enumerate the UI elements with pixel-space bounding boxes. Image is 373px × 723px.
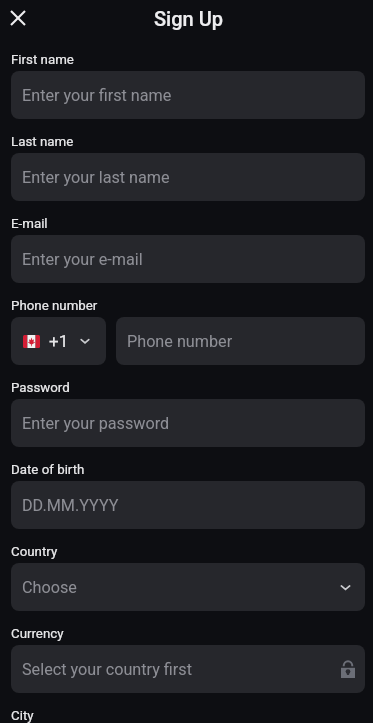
staticText: First name: [11, 52, 74, 68]
staticText: Enter your first name: [22, 86, 353, 105]
staticText: Select your country first: [22, 660, 341, 679]
staticText: Choose: [22, 578, 340, 597]
button[interactable]: Phone number: [116, 317, 365, 365]
button[interactable]: Enter your e-mail: [11, 235, 365, 283]
staticText: Enter your e-mail: [22, 250, 353, 269]
staticText: DD.MM.YYYY: [22, 496, 353, 515]
button[interactable]: DD.MM.YYYY: [11, 481, 365, 529]
staticText: Last name: [11, 134, 74, 150]
button[interactable]: Close: [5, 5, 31, 31]
staticText: Phone number: [127, 332, 353, 351]
staticText: Sign Up: [154, 7, 223, 30]
staticText: Country: [11, 544, 58, 560]
button[interactable]: Choose: [11, 563, 365, 611]
staticText: E-mail: [11, 216, 48, 232]
button[interactable]: +1: [11, 317, 106, 365]
button[interactable]: Enter your last name: [11, 153, 365, 201]
button[interactable]: Enter your password: [11, 399, 365, 447]
staticText: Enter your last name: [22, 168, 353, 187]
staticText: Date of birth: [11, 462, 85, 478]
staticText: +1: [49, 331, 69, 351]
staticText: Password: [11, 380, 70, 396]
staticText: Phone number: [11, 298, 98, 314]
button[interactable]: Enter your first name: [11, 71, 365, 119]
staticText: Enter your password: [22, 414, 353, 433]
staticText: City: [11, 708, 34, 723]
button[interactable]: Select your country first: [11, 645, 365, 693]
staticText: Currency: [11, 626, 64, 642]
